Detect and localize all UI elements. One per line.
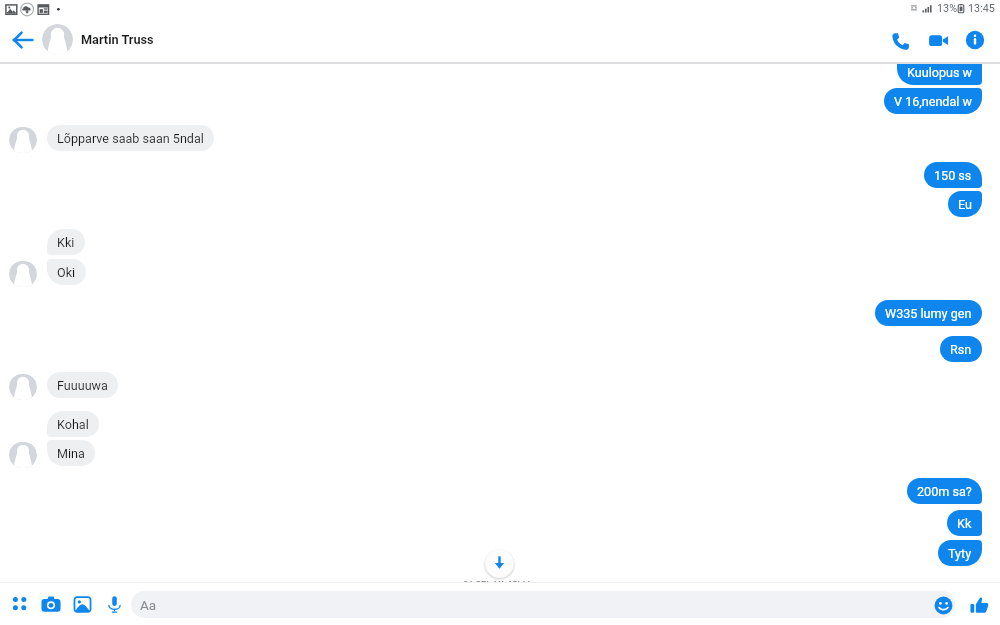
button[interactable]: Choose an emoji — [931, 593, 955, 617]
staticText: 01 SEP AT 13:44 — [463, 574, 531, 585]
button[interactable]: Rsn — [940, 336, 982, 362]
staticText: V 16,nendal w — [894, 94, 972, 109]
staticText: Eu — [958, 197, 972, 212]
button[interactable]: Profile photo — [9, 261, 37, 287]
staticText: Tyty — [948, 546, 972, 561]
button[interactable]: Profile photo — [9, 374, 37, 400]
button[interactable]: Video call — [920, 22, 956, 58]
staticText: 200m sa? — [917, 484, 972, 499]
button[interactable]: Mina — [47, 440, 95, 466]
button[interactable]: Kki — [47, 229, 85, 255]
staticText: 150 ss — [934, 168, 972, 183]
button[interactable]: Kohal — [47, 411, 99, 437]
button[interactable]: Scroll to latest messages — [483, 547, 516, 580]
button[interactable]: V 16,nendal w — [884, 88, 982, 114]
staticText: Kuulopus w — [907, 65, 972, 80]
staticText: Kk — [957, 516, 972, 531]
button[interactable]: Record voice message — [98, 588, 130, 620]
button[interactable]: Kk — [947, 510, 982, 536]
button[interactable]: Profile photo — [9, 127, 37, 153]
staticText: Martin Truss — [81, 32, 154, 47]
button[interactable]: Photo gallery — [66, 588, 98, 620]
button[interactable]: Camera — [35, 588, 67, 620]
staticText: 13:45 — [968, 2, 995, 15]
staticText: Fuuuuwa — [57, 378, 108, 393]
button[interactable]: Tyty — [938, 540, 982, 566]
button[interactable]: Oki — [47, 259, 86, 285]
button[interactable]: W335 lumy gen — [875, 300, 982, 326]
staticText: W335 lumy gen — [885, 306, 972, 321]
button[interactable]: Lõpparve saab saan 5ndal — [47, 125, 214, 151]
button[interactable]: Kuulopus w — [897, 54, 982, 85]
button[interactable]: Send a like — [966, 592, 992, 618]
staticText: Kki — [57, 235, 75, 250]
staticText: Aa — [140, 597, 157, 613]
button[interactable]: 150 ss — [924, 162, 982, 188]
staticText: Oki — [57, 265, 76, 280]
button[interactable]: Open actions — [4, 588, 36, 620]
button[interactable]: Fuuuuwa — [47, 372, 118, 398]
button[interactable]: Back — [5, 22, 41, 58]
staticText: Lõpparve saab saan 5ndal — [57, 131, 204, 146]
staticText: Kohal — [57, 417, 89, 432]
staticText: Rsn — [950, 342, 972, 357]
button[interactable]: Martin Truss — [81, 24, 154, 55]
button[interactable]: Conversation information — [957, 22, 993, 58]
button[interactable]: 200m sa? — [907, 478, 982, 504]
button[interactable]: Eu — [948, 191, 982, 217]
staticText: Mina — [57, 446, 85, 461]
button[interactable]: Aa — [131, 591, 955, 618]
button[interactable]: Profile photo — [9, 442, 37, 468]
button[interactable]: Voice call — [882, 23, 918, 59]
staticText: 13% — [937, 2, 958, 15]
button[interactable]: Profile picture — [42, 24, 73, 55]
